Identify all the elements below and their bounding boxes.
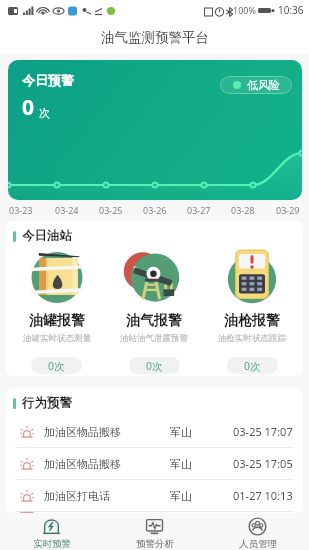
staticText: 03-29 bbox=[276, 204, 300, 216]
staticText: 实时预警 bbox=[33, 538, 71, 550]
button[interactable]: 油罐报警 bbox=[8, 249, 105, 374]
staticText: 军山 bbox=[170, 489, 192, 503]
staticText: 03-26 bbox=[143, 204, 167, 216]
staticText: 油气报警 bbox=[126, 312, 182, 330]
staticText: 油气监测预警平台 bbox=[101, 29, 209, 46]
button[interactable]: 人员管理 bbox=[206, 513, 309, 550]
button[interactable]: 油气报警 bbox=[105, 249, 203, 374]
button[interactable]: 油枪报警 bbox=[203, 249, 301, 374]
staticText: 油站油气泄露预警 bbox=[120, 333, 188, 344]
staticText: 03-25 17:05 bbox=[233, 456, 293, 471]
staticText: 加油区物品搬移 bbox=[44, 425, 121, 439]
staticText: 0次 bbox=[48, 359, 65, 373]
staticText: 03-24 bbox=[55, 204, 79, 216]
staticText: 油罐实时状态测量 bbox=[23, 333, 91, 344]
button[interactable]: 加油区物品搬移 bbox=[6, 416, 303, 447]
staticText: 03-25 bbox=[99, 204, 123, 216]
staticText: 0 bbox=[22, 93, 35, 122]
staticText: 军山 bbox=[170, 425, 192, 439]
button[interactable]: 实时预警 bbox=[0, 513, 103, 550]
button[interactable]: 预警分析 bbox=[103, 513, 206, 550]
button[interactable]: 加油区物品搬移 bbox=[6, 448, 303, 479]
staticText: 03-25 17:07 bbox=[233, 424, 293, 439]
staticText: 加油区物品搬移 bbox=[44, 457, 121, 471]
button[interactable]: 加油区物品搬移 bbox=[6, 512, 303, 513]
staticText: 03-28 bbox=[231, 204, 255, 216]
staticText: 人员管理 bbox=[239, 538, 277, 550]
staticText: 01-27 10:13 bbox=[233, 488, 293, 503]
staticText: 低风险 bbox=[247, 78, 280, 92]
staticText: 油枪实时状态跟踪 bbox=[218, 333, 286, 344]
staticText: 0次 bbox=[146, 359, 163, 373]
button[interactable]: 低风险 bbox=[220, 76, 292, 94]
staticText: 03-27 bbox=[187, 204, 211, 216]
staticText: 预警分析 bbox=[136, 538, 174, 550]
staticText: 0次 bbox=[244, 359, 261, 373]
staticText: 03-23 bbox=[9, 204, 33, 216]
staticText: 军山 bbox=[170, 457, 192, 471]
staticText: 100% bbox=[233, 4, 256, 16]
staticText: 今日预警 bbox=[22, 72, 74, 88]
staticText: 10:36 bbox=[278, 3, 304, 17]
button[interactable]: 加油区打电话 bbox=[6, 480, 303, 511]
staticText: 行为预警 bbox=[22, 395, 72, 411]
staticText: 加油区打电话 bbox=[44, 489, 110, 503]
staticText: 今日油站 bbox=[22, 228, 72, 244]
staticText: 油罐报警 bbox=[29, 312, 85, 330]
staticText: 次 bbox=[39, 106, 50, 120]
staticText: 油枪报警 bbox=[224, 312, 280, 330]
